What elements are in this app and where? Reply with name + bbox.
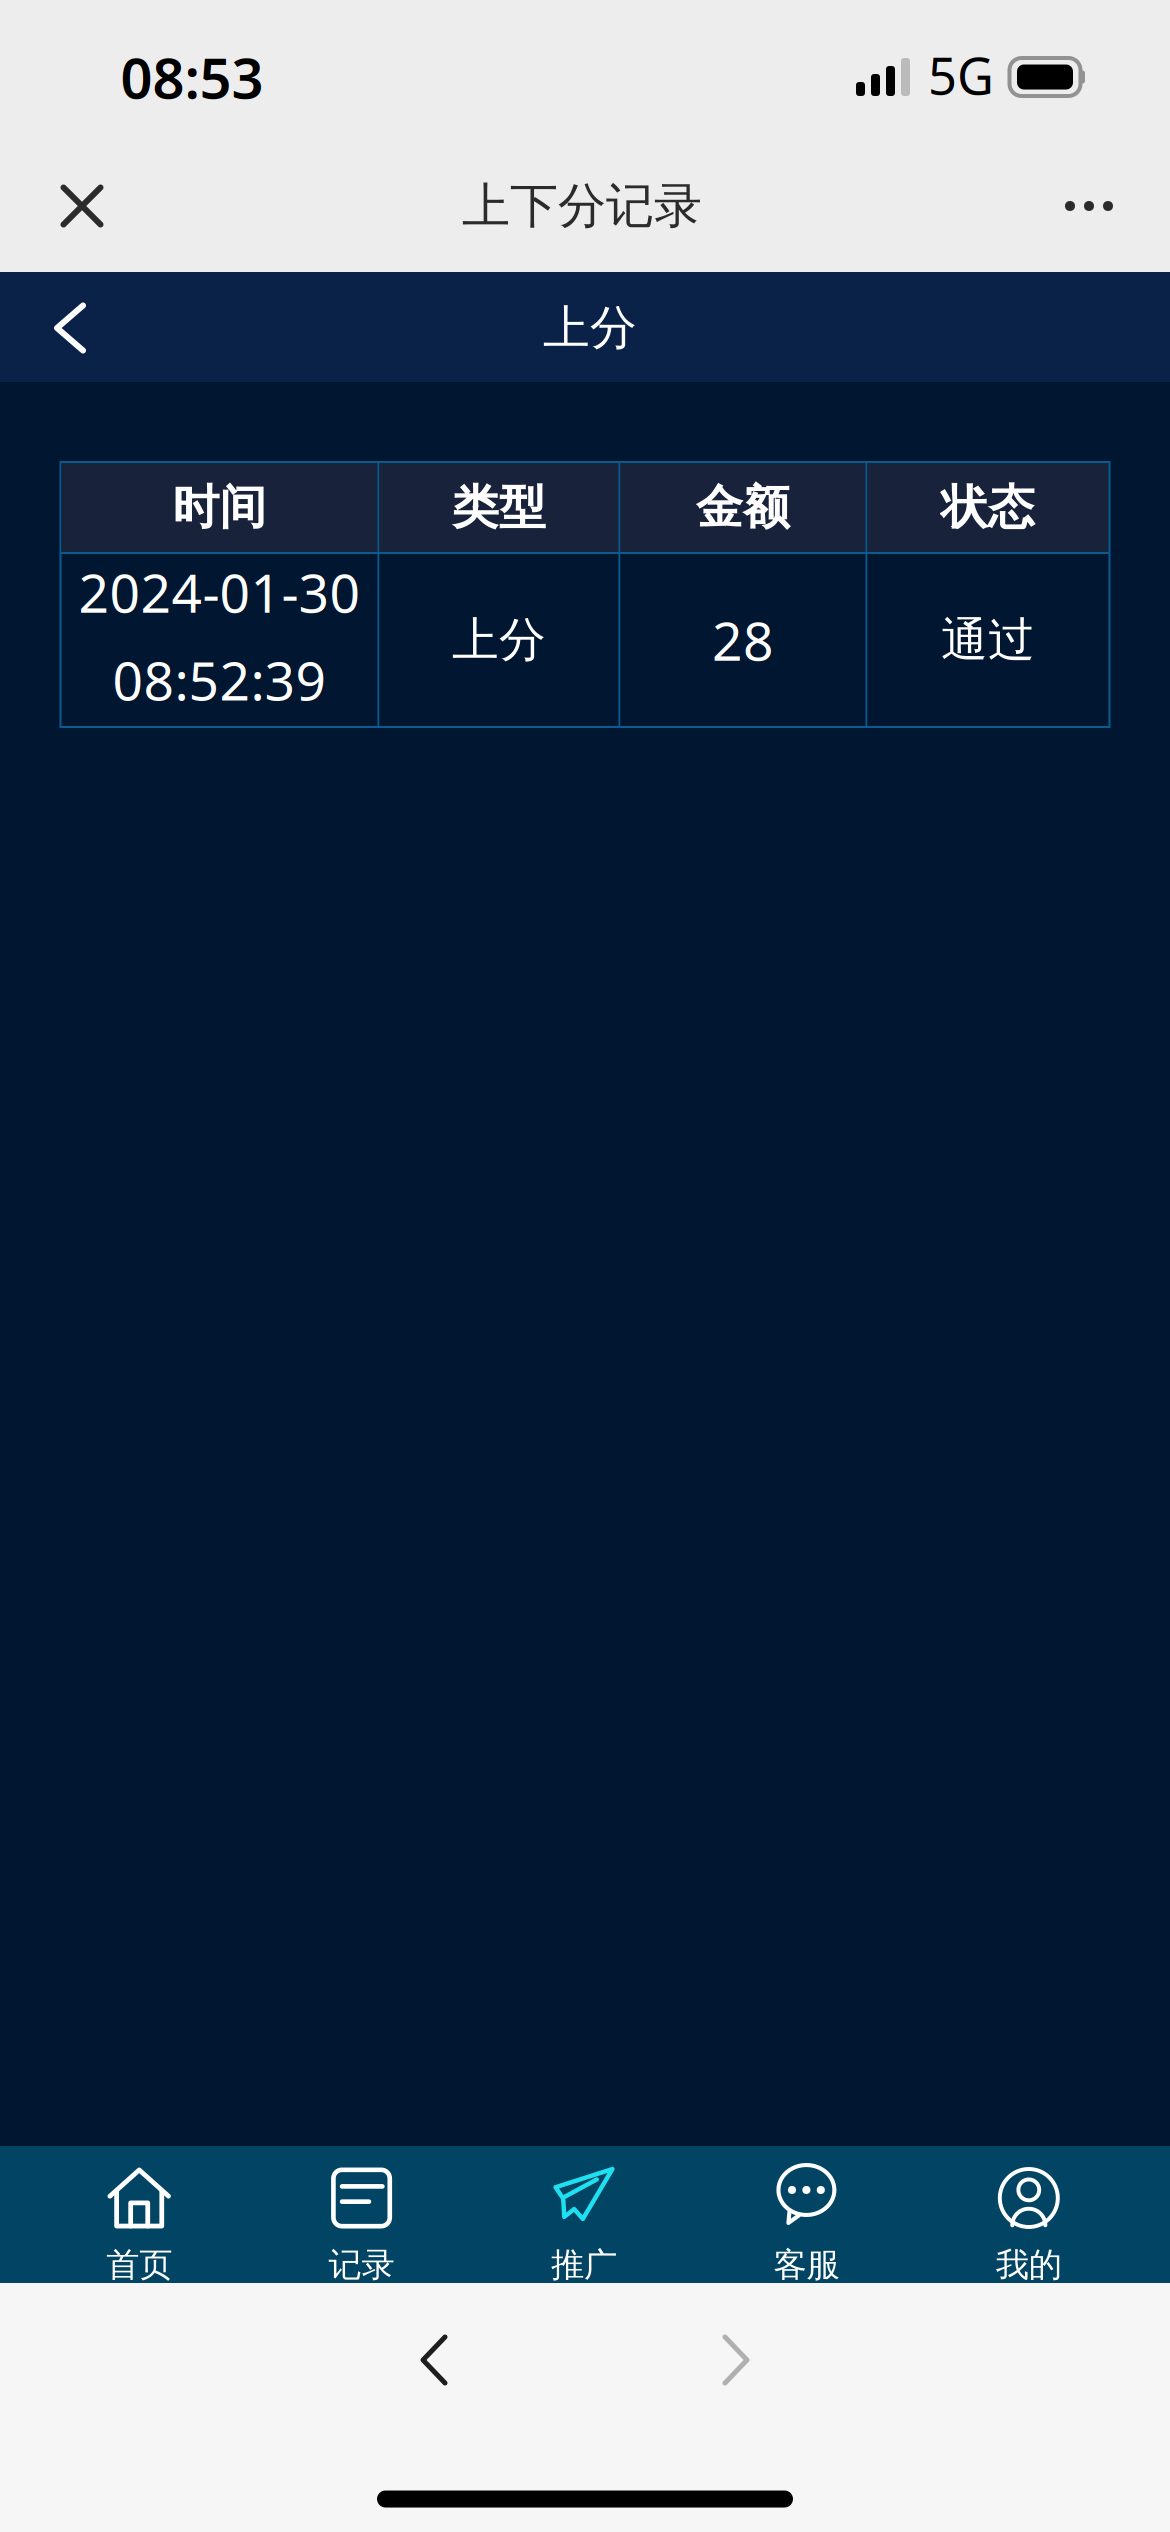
staticText: 2024-01-30: [78, 557, 360, 627]
staticText: 上下分记录: [462, 176, 702, 235]
button[interactable]: 推广: [473, 2146, 695, 2283]
button[interactable]: Close: [26, 150, 138, 262]
staticText: 08:53: [120, 40, 263, 114]
staticText: 推广: [551, 2244, 617, 2285]
button[interactable]: 记录: [250, 2146, 473, 2283]
staticText: 28: [712, 605, 774, 675]
staticText: 时间: [172, 479, 266, 536]
staticText: 通过: [941, 611, 1035, 669]
staticText: 上分: [543, 299, 637, 357]
staticText: 记录: [329, 2244, 395, 2285]
staticText: 状态: [941, 479, 1035, 536]
staticText: 5G: [928, 41, 994, 109]
button[interactable]: Forward: [688, 2305, 784, 2415]
button[interactable]: More: [1033, 150, 1145, 262]
staticText: 首页: [106, 2244, 172, 2285]
button[interactable]: 客服: [695, 2146, 918, 2283]
staticText: 类型: [452, 479, 546, 536]
staticText: 上分: [452, 611, 546, 669]
button[interactable]: Back: [24, 278, 116, 378]
staticText: 客服: [773, 2244, 839, 2285]
staticText: 我的: [996, 2244, 1062, 2285]
button[interactable]: 我的: [918, 2146, 1140, 2283]
staticText: 金额: [696, 479, 790, 536]
staticText: 08:52:39: [112, 644, 326, 715]
button[interactable]: 首页: [28, 2146, 250, 2283]
button[interactable]: Back: [386, 2305, 482, 2415]
